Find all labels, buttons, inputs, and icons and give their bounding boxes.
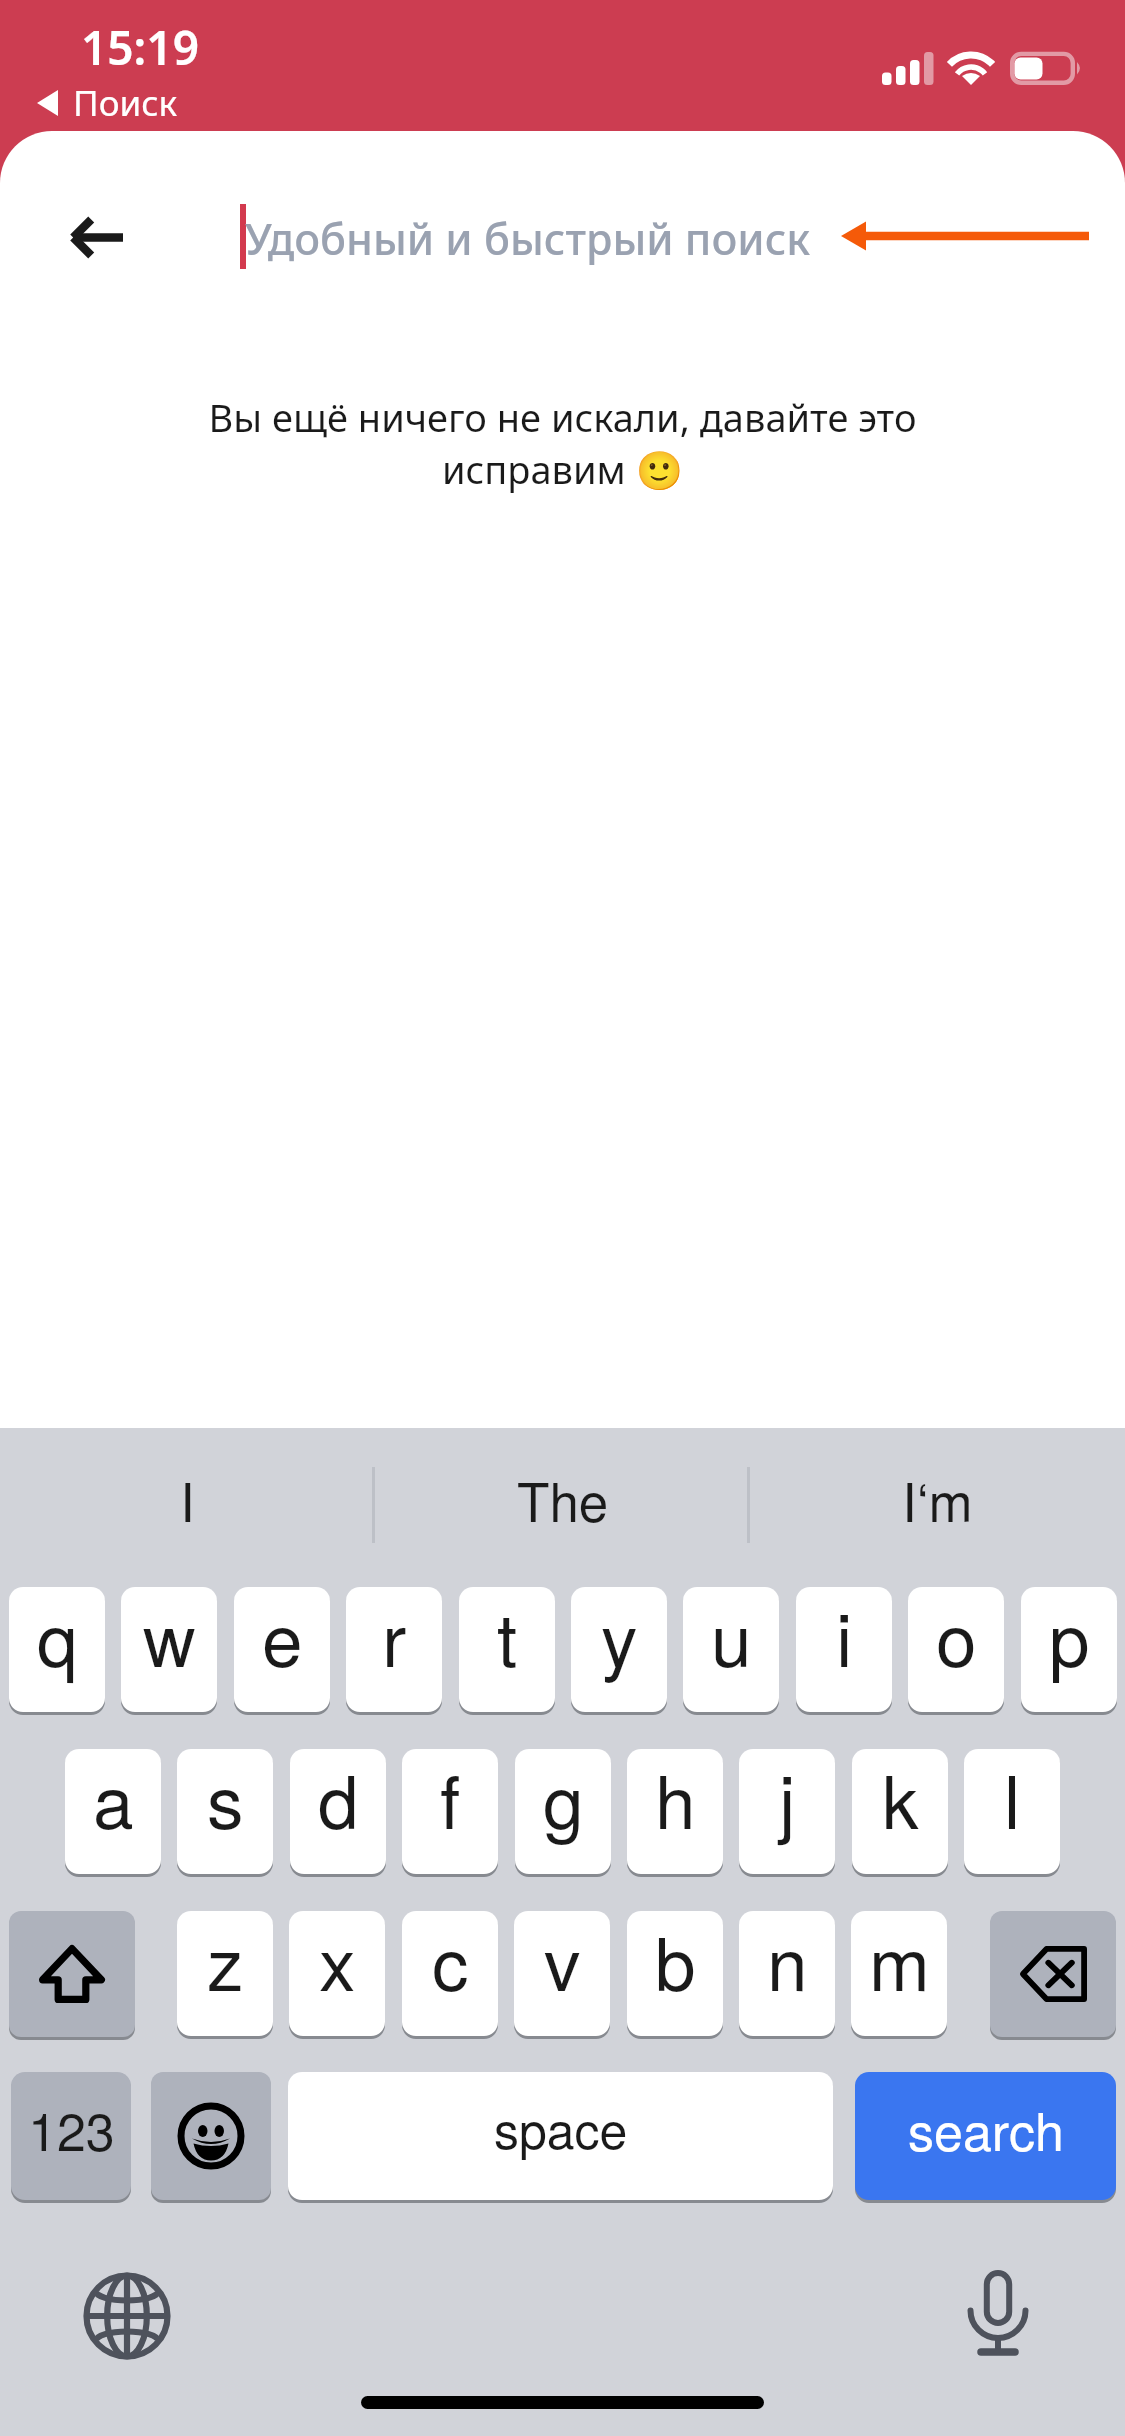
button[interactable]: q bbox=[9, 1587, 105, 1712]
button[interactable]: Сменить язык bbox=[66, 2256, 187, 2376]
staticText: Поиск bbox=[73, 79, 178, 127]
staticText: i bbox=[836, 1587, 853, 1688]
staticText: 15:19 bbox=[81, 16, 199, 79]
button[interactable]: h bbox=[627, 1749, 723, 1874]
staticText: k bbox=[882, 1749, 919, 1850]
staticText: j bbox=[779, 1749, 796, 1850]
staticText: m bbox=[869, 1911, 930, 2012]
staticText: b bbox=[655, 1911, 696, 2012]
button[interactable]: search bbox=[855, 2072, 1116, 2200]
staticText: search bbox=[908, 2091, 1064, 2165]
staticText: h bbox=[655, 1749, 696, 1850]
staticText: y bbox=[601, 1587, 638, 1688]
button[interactable]: o bbox=[908, 1587, 1004, 1712]
staticText: I‘m bbox=[902, 1461, 973, 1537]
button[interactable]: k bbox=[852, 1749, 948, 1874]
staticText: a bbox=[93, 1749, 134, 1850]
button[interactable]: j bbox=[739, 1749, 835, 1874]
staticText: Вы ещё ничего не искали, давайте это исп… bbox=[100, 391, 1025, 495]
button[interactable]: Поиск bbox=[37, 79, 178, 127]
button[interactable]: Назад bbox=[36, 177, 156, 297]
staticText: n bbox=[767, 1911, 808, 2012]
staticText: q bbox=[37, 1587, 78, 1688]
staticText: z bbox=[207, 1911, 244, 2012]
button[interactable]: Emoji bbox=[151, 2072, 271, 2200]
button[interactable]: Удобный и быстрый поиск bbox=[232, 171, 1092, 301]
button[interactable]: e bbox=[234, 1587, 330, 1712]
button[interactable]: i bbox=[796, 1587, 892, 1712]
button[interactable]: x bbox=[289, 1911, 385, 2036]
staticText: The bbox=[517, 1461, 609, 1537]
button[interactable]: The bbox=[375, 1428, 750, 1578]
staticText: d bbox=[318, 1749, 359, 1850]
button[interactable]: p bbox=[1021, 1587, 1117, 1712]
button[interactable]: g bbox=[515, 1749, 611, 1874]
button[interactable]: I‘m bbox=[750, 1428, 1125, 1578]
staticText: space bbox=[494, 2092, 628, 2164]
button[interactable]: c bbox=[402, 1911, 498, 2036]
staticText: s bbox=[207, 1749, 244, 1850]
staticText: t bbox=[497, 1587, 518, 1688]
button[interactable]: space bbox=[288, 2072, 833, 2200]
button[interactable]: d bbox=[290, 1749, 386, 1874]
staticText: Удобный и быстрый поиск bbox=[245, 209, 811, 268]
staticText: p bbox=[1049, 1587, 1090, 1688]
staticText: r bbox=[382, 1587, 407, 1688]
button[interactable]: Shift bbox=[9, 1911, 135, 2037]
button[interactable]: I bbox=[0, 1428, 375, 1578]
staticText: x bbox=[319, 1911, 356, 2012]
button[interactable]: n bbox=[739, 1911, 835, 2036]
staticText: o bbox=[936, 1587, 977, 1688]
staticText: l bbox=[1004, 1749, 1021, 1850]
staticText: e bbox=[262, 1587, 303, 1688]
staticText: v bbox=[544, 1911, 581, 2012]
button[interactable]: z bbox=[177, 1911, 273, 2036]
button[interactable]: u bbox=[683, 1587, 779, 1712]
button[interactable]: a bbox=[65, 1749, 161, 1874]
button[interactable]: s bbox=[177, 1749, 273, 1874]
button[interactable]: m bbox=[851, 1911, 947, 2036]
staticText: I bbox=[180, 1461, 195, 1537]
button[interactable]: v bbox=[514, 1911, 610, 2036]
button[interactable]: b bbox=[627, 1911, 723, 2036]
staticText: 123 bbox=[28, 2091, 115, 2165]
button[interactable]: y bbox=[571, 1587, 667, 1712]
staticText: f bbox=[440, 1749, 461, 1850]
staticText: g bbox=[543, 1749, 584, 1850]
button[interactable]: Backspace bbox=[990, 1911, 1116, 2037]
button[interactable]: t bbox=[459, 1587, 555, 1712]
button[interactable]: Голосовой ввод bbox=[938, 2260, 1058, 2380]
staticText: w bbox=[143, 1587, 196, 1688]
button[interactable]: 123 bbox=[11, 2072, 131, 2200]
button[interactable]: w bbox=[121, 1587, 217, 1712]
staticText: u bbox=[711, 1587, 752, 1688]
staticText: c bbox=[432, 1911, 469, 2012]
button[interactable]: l bbox=[964, 1749, 1060, 1874]
button[interactable]: f bbox=[402, 1749, 498, 1874]
button[interactable]: r bbox=[346, 1587, 442, 1712]
